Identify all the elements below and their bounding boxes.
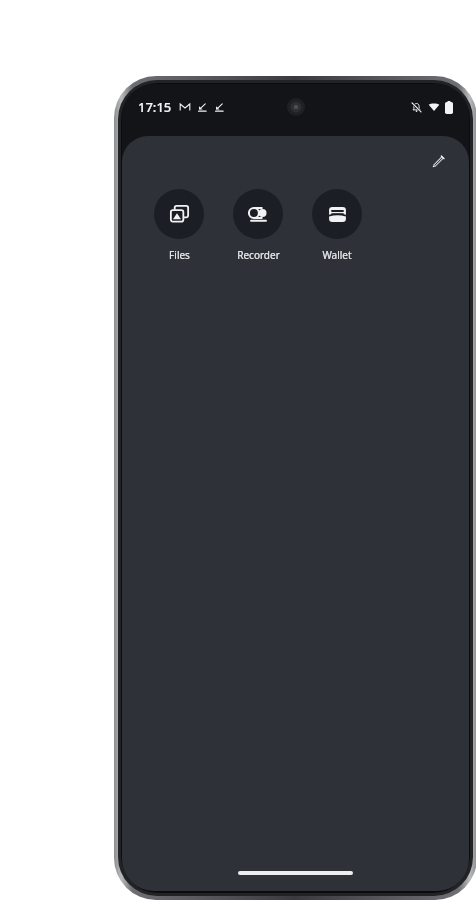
staticText: 17:15 xyxy=(138,98,172,116)
staticText: Wallet xyxy=(322,248,352,262)
button[interactable]: Recorder xyxy=(227,189,289,262)
staticText: Files xyxy=(169,248,190,262)
button[interactable]: Wallet xyxy=(306,189,368,262)
button[interactable]: Files xyxy=(148,189,210,262)
button[interactable]: Edit xyxy=(419,142,457,180)
staticText: Recorder xyxy=(237,248,280,262)
